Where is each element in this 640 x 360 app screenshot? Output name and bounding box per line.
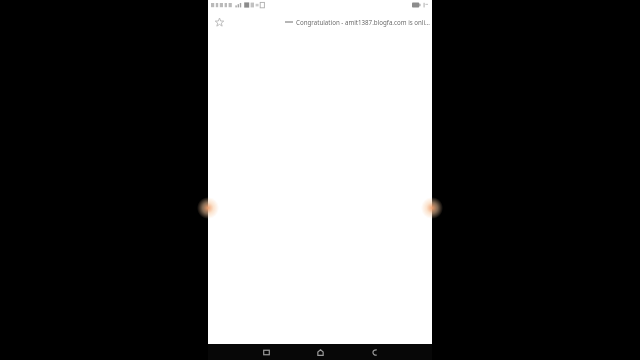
button[interactable]: Star conversation [211,14,227,30]
button[interactable]: Home [305,344,335,360]
button[interactable]: Recent apps [251,344,281,360]
staticText: Congratulation - amit1387.blogfa.com is … [296,18,430,26]
button[interactable]: Star conversation [208,10,432,34]
button[interactable]: Back [359,344,389,360]
